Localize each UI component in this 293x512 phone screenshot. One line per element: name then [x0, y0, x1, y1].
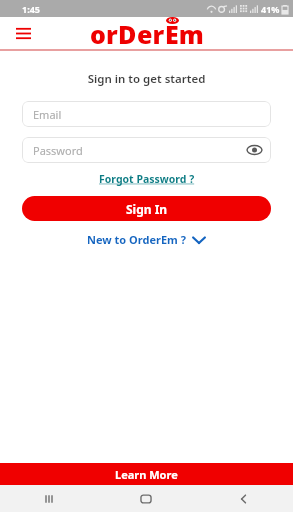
staticText: 41%	[261, 3, 280, 15]
staticText: er	[137, 17, 165, 49]
staticText: 1:45	[22, 3, 40, 15]
button[interactable]: Learn More	[0, 463, 293, 485]
button[interactable]: Open navigation menu	[10, 20, 36, 46]
staticText: Forgot Password ?	[99, 172, 195, 186]
staticText: Email	[33, 107, 62, 122]
button[interactable]: Back	[195, 485, 293, 512]
button[interactable]: Show password	[245, 141, 263, 159]
staticText: Learn More	[115, 467, 178, 482]
button[interactable]: Password	[22, 137, 271, 163]
staticText: Em	[165, 17, 204, 49]
staticText: Password	[33, 143, 83, 158]
button[interactable]: Home	[97, 485, 195, 512]
staticText: D	[118, 17, 137, 49]
button[interactable]: Sign In	[22, 196, 271, 221]
button[interactable]: Email	[22, 101, 271, 127]
button[interactable]: New to OrderEm ?	[0, 232, 293, 247]
staticText: Sign in to get started	[0, 71, 293, 87]
button[interactable]: Forgot Password ?	[0, 172, 293, 186]
button[interactable]: Recents	[0, 485, 97, 512]
staticText: Sign In	[126, 201, 168, 217]
staticText: New to OrderEm ?	[87, 232, 186, 247]
staticText: or	[90, 17, 118, 49]
